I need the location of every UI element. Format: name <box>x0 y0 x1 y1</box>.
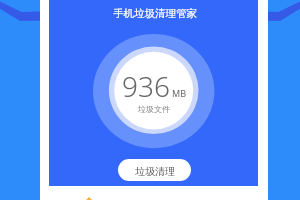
button[interactable]: Cache files <box>49 186 258 200</box>
button[interactable]: 垃圾清理 <box>118 159 191 181</box>
other: Cache files <box>84 197 94 200</box>
staticText: MB <box>172 87 187 99</box>
staticText: 垃圾文件 <box>138 104 170 114</box>
staticText: 手机垃圾清理管家 <box>113 7 197 20</box>
staticText: 936 <box>122 67 170 105</box>
staticText: 垃圾清理 <box>135 165 175 178</box>
